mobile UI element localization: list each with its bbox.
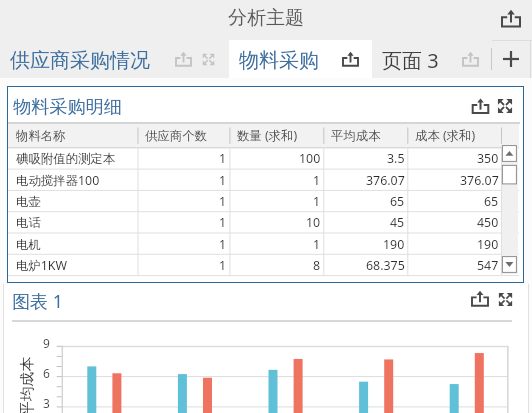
- staticText: 1: [219, 193, 227, 210]
- staticText: 376.07: [460, 172, 499, 189]
- staticText: 平均成本: [17, 356, 36, 413]
- staticText: 1: [219, 172, 227, 189]
- button[interactable]: Scroll: [502, 144, 518, 274]
- staticText: 45: [390, 214, 405, 231]
- staticText: 数量 (求和): [237, 127, 298, 144]
- staticText: 物料采购: [239, 48, 319, 73]
- staticText: 分析主题: [228, 6, 304, 30]
- staticText: 1: [219, 214, 227, 231]
- staticText: 1: [219, 257, 227, 274]
- staticText: 成本 (求和): [415, 127, 476, 144]
- staticText: 电机: [16, 237, 41, 253]
- button[interactable]: Add page: [492, 40, 530, 78]
- button[interactable]: 供应商采购情况: [0, 40, 229, 78]
- staticText: 350: [477, 150, 499, 167]
- staticText: 3.5: [387, 150, 405, 167]
- staticText: 电话: [16, 215, 41, 231]
- staticText: 物料采购明细: [13, 95, 123, 118]
- button[interactable]: Share: [460, 86, 500, 126]
- staticText: 190: [383, 236, 405, 253]
- staticText: 1: [313, 236, 321, 253]
- staticText: 10: [306, 214, 321, 231]
- staticText: 供应商个数: [145, 128, 207, 144]
- button[interactable]: 页面 3: [372, 40, 492, 78]
- staticText: 1: [313, 172, 321, 189]
- button[interactable]: Fullscreen: [201, 52, 216, 67]
- staticText: 物料名称: [16, 128, 66, 144]
- staticText: 供应商采购情况: [10, 48, 150, 73]
- button[interactable]: Share: [176, 52, 191, 67]
- button[interactable]: Fullscreen: [485, 86, 525, 126]
- staticText: 65: [484, 193, 499, 210]
- staticText: 68.375: [366, 257, 405, 274]
- staticText: 1: [219, 150, 227, 167]
- staticText: 1: [313, 193, 321, 210]
- button[interactable]: Share: [343, 52, 358, 67]
- button[interactable]: 物料采购: [229, 40, 372, 78]
- staticText: 65: [390, 193, 405, 210]
- staticText: 电壶: [16, 194, 41, 210]
- staticText: 页面 3: [382, 47, 439, 74]
- staticText: 碘吸附值的测定本: [16, 151, 116, 167]
- staticText: 190: [477, 236, 499, 253]
- staticText: 8: [313, 257, 321, 274]
- staticText: 1: [219, 236, 227, 253]
- staticText: 平均成本: [331, 128, 381, 144]
- button[interactable]: Share: [463, 52, 478, 67]
- staticText: 547: [477, 257, 499, 274]
- staticText: 376.07: [366, 172, 405, 189]
- staticText: 电炉1KW: [16, 257, 68, 274]
- staticText: 100: [299, 150, 321, 167]
- staticText: 图表 1: [12, 289, 63, 314]
- button[interactable]: Share: [465, 284, 495, 314]
- staticText: 6: [43, 365, 50, 381]
- staticText: 3: [43, 395, 50, 411]
- button[interactable]: Fullscreen: [490, 284, 520, 314]
- staticText: 9: [43, 335, 50, 351]
- button[interactable]: Share: [496, 4, 526, 34]
- staticText: 电动搅拌器100: [16, 172, 100, 189]
- staticText: 450: [477, 214, 499, 231]
